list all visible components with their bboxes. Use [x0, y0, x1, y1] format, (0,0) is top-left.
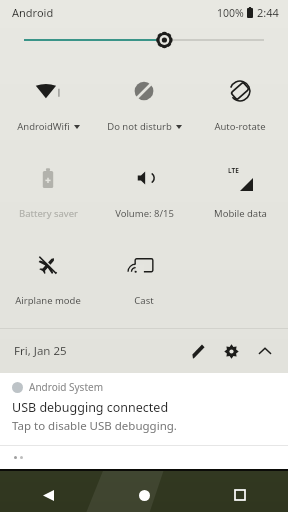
button[interactable]: Collapse	[248, 334, 282, 368]
button[interactable]: Settings	[214, 334, 248, 368]
staticText: Do not disturb	[107, 120, 172, 133]
staticText: 2:44	[257, 5, 279, 20]
button[interactable]: Android System	[0, 373, 288, 445]
staticText: Auto-rotate	[214, 120, 266, 133]
button[interactable]: Recent apps	[218, 478, 262, 512]
staticText: Cast	[134, 294, 154, 307]
staticText: Android System	[29, 380, 104, 394]
staticText: Tap to disable USB debugging.	[12, 418, 177, 434]
button[interactable]: Back	[26, 478, 70, 512]
button[interactable]	[0, 446, 288, 469]
button[interactable]: LTE	[192, 151, 288, 220]
staticText: USB debugging connected	[12, 399, 169, 416]
button[interactable]: Airplane mode	[0, 238, 96, 307]
button[interactable]: Battery saver	[0, 151, 96, 220]
button[interactable]: Do not disturb	[96, 64, 192, 133]
staticText: Battery saver	[19, 207, 78, 220]
staticText: Airplane mode	[15, 294, 81, 307]
button[interactable]: Home	[122, 478, 166, 512]
staticText: Android	[12, 5, 54, 20]
staticText: Mobile data	[214, 207, 267, 220]
staticText: 100%	[217, 6, 244, 20]
button[interactable]: Cast	[96, 238, 192, 307]
button[interactable]: Volume: 8/15	[96, 151, 192, 220]
button[interactable]: Edit	[180, 334, 214, 368]
button[interactable]: Auto-rotate	[192, 64, 288, 133]
button[interactable]: AndroidWifi	[0, 64, 96, 133]
button[interactable]	[0, 24, 288, 56]
staticText: LTE	[228, 166, 239, 175]
staticText: Fri, Jan 25	[14, 343, 67, 359]
staticText: Volume: 8/15	[115, 207, 174, 220]
staticText: AndroidWifi	[17, 120, 70, 133]
